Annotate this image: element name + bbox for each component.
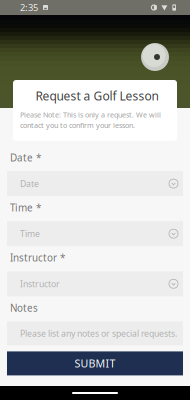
staticText: contact you to confirm your lesson.: [20, 120, 135, 130]
button[interactable]: SUBMIT: [7, 351, 183, 375]
button[interactable]: Time: [7, 221, 183, 246]
staticText: Instructor *: [10, 251, 65, 264]
staticText: 2:35: [20, 1, 38, 14]
staticText: Request a Golf Lesson: [35, 88, 158, 104]
staticText: Please list any notes or special request…: [20, 328, 177, 339]
staticText: Date: [20, 178, 39, 189]
staticText: Please Note: This is only a request. We …: [20, 110, 161, 119]
staticText: SUBMIT: [74, 356, 115, 370]
button[interactable]: Instructor: [7, 271, 183, 296]
button[interactable]: Please list any notes or special request…: [7, 321, 183, 345]
staticText: Date *: [10, 151, 41, 164]
staticText: Notes: [10, 301, 38, 314]
staticText: Instructor: [20, 278, 60, 290]
staticText: Time: [20, 228, 40, 239]
button[interactable]: Date: [7, 171, 183, 196]
staticText: Time *: [10, 201, 41, 214]
